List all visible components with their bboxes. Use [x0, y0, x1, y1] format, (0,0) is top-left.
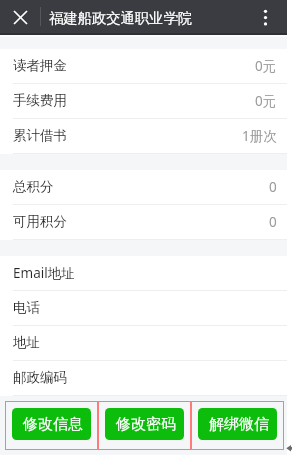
- staticText: 修改密码: [116, 415, 176, 434]
- button[interactable]: 修改密码: [105, 408, 184, 440]
- button[interactable]: 邮政编码: [0, 361, 287, 396]
- staticText: 0: [269, 213, 277, 231]
- button[interactable]: 累计借书: [0, 119, 287, 154]
- staticText: 修改信息: [23, 415, 83, 434]
- staticText: 解绑微信: [209, 415, 269, 434]
- button[interactable]: 电话: [0, 291, 287, 326]
- button[interactable]: 可用积分: [0, 205, 287, 240]
- staticText: 邮政编码: [13, 369, 67, 386]
- button[interactable]: 修改信息: [12, 408, 91, 440]
- staticText: 地址: [13, 334, 40, 351]
- button[interactable]: Close: [0, 0, 40, 35]
- staticText: 读者押金: [13, 57, 67, 74]
- staticText: 累计借书: [13, 127, 67, 144]
- staticText: 1册次: [242, 127, 277, 145]
- button[interactable]: 解绑微信: [198, 408, 277, 440]
- staticText: 总积分: [13, 178, 54, 195]
- button[interactable]: Email地址: [0, 256, 287, 291]
- staticText: 福建船政交通职业学院: [49, 9, 192, 27]
- staticText: 手续费用: [13, 92, 67, 109]
- button[interactable]: 手续费用: [0, 84, 287, 119]
- staticText: 0元: [255, 92, 277, 110]
- staticText: 0: [269, 178, 277, 196]
- staticText: 电话: [13, 299, 40, 316]
- staticText: Email地址: [13, 264, 75, 282]
- button[interactable]: 读者押金: [0, 49, 287, 84]
- staticText: 可用积分: [13, 213, 67, 230]
- button[interactable]: 总积分: [0, 170, 287, 205]
- button[interactable]: 地址: [0, 326, 287, 361]
- button[interactable]: More options: [245, 0, 287, 35]
- staticText: 0元: [255, 57, 277, 75]
